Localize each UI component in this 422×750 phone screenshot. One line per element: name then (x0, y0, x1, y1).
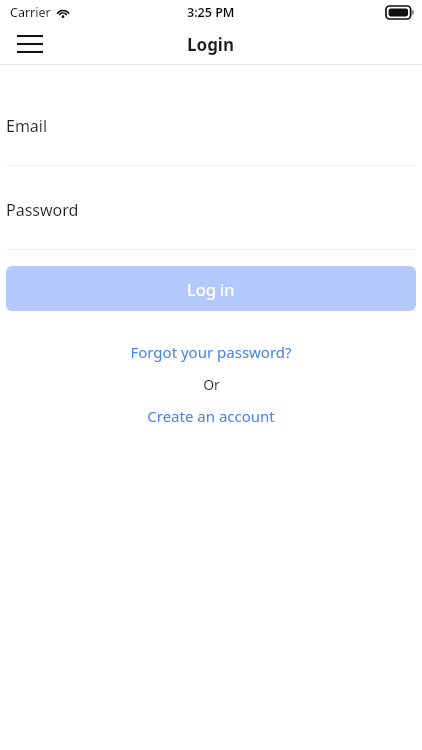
staticText: Log in (187, 278, 235, 300)
staticText: Forgot your password? (130, 342, 292, 362)
staticText: Password (6, 199, 79, 221)
staticText: Carrier (10, 4, 51, 21)
button[interactable]: Log in (6, 266, 416, 311)
button[interactable]: Create an account (0, 403, 422, 429)
button[interactable]: Email (0, 111, 422, 141)
staticText: Create an account (147, 406, 275, 426)
staticText: Or (203, 375, 220, 394)
button[interactable]: Password (0, 195, 422, 225)
staticText: 3:25 PM (187, 4, 235, 21)
button[interactable]: Forgot your password? (0, 339, 422, 365)
staticText: Login (187, 33, 235, 56)
button[interactable]: Open navigation menu (8, 25, 52, 63)
staticText: Email (6, 115, 48, 137)
